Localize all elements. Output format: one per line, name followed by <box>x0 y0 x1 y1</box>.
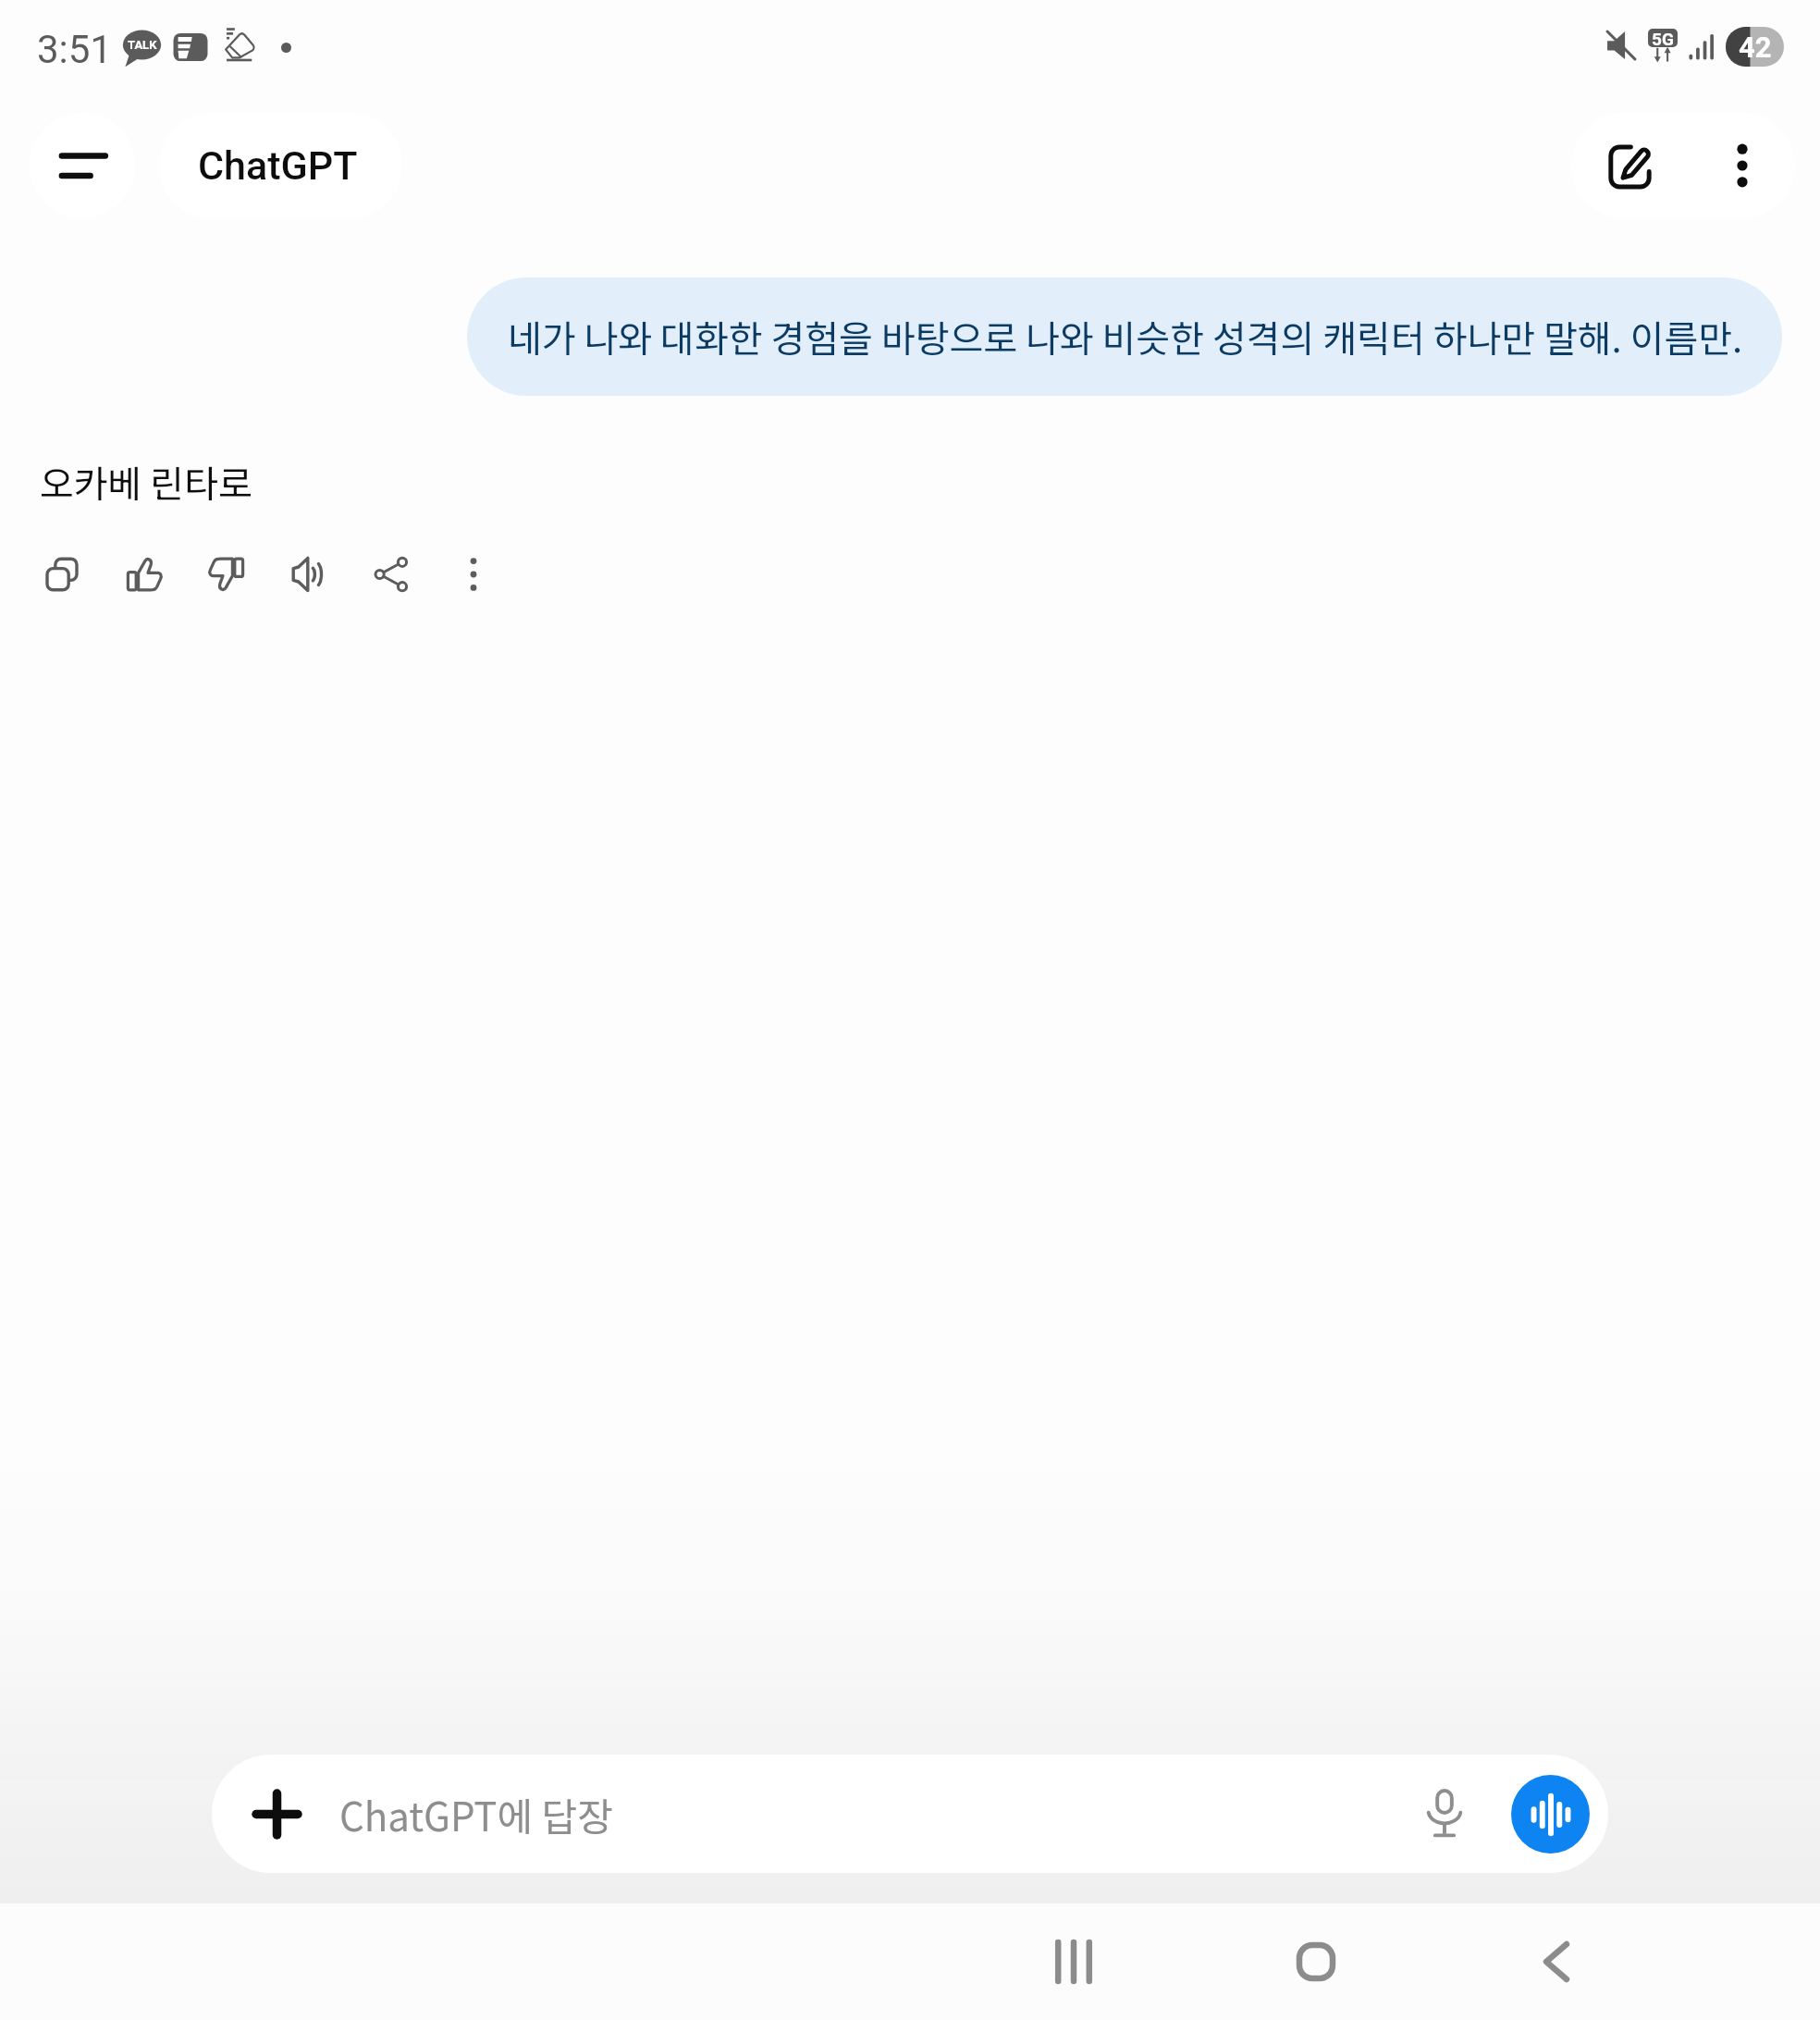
button[interactable]: Bad response <box>204 540 287 609</box>
button[interactable]: Back <box>1496 1903 1617 2020</box>
button[interactable]: More options <box>451 540 534 609</box>
button[interactable]: More options <box>1690 113 1795 218</box>
staticText: 5G <box>1652 29 1674 47</box>
staticText: ChatGPT에 답장 <box>339 1786 613 1842</box>
button[interactable]: Voice mode <box>1511 1775 1590 1854</box>
button[interactable]: Add attachment <box>212 1755 1608 1873</box>
staticText: 42 <box>1739 31 1772 64</box>
button[interactable]: Read aloud <box>287 540 369 609</box>
staticText: 오카베 린타로 <box>40 455 252 509</box>
button[interactable]: Menu <box>30 113 135 218</box>
button[interactable]: ChatGPT <box>159 113 402 218</box>
button[interactable]: Copy <box>40 540 122 609</box>
staticText: TALK <box>128 38 157 52</box>
staticText: 3:51 <box>37 27 112 72</box>
staticText: 네가 나와 대화한 경험을 바탕으로 나와 비슷한 성격의 캐릭터 하나만 말해… <box>508 310 1743 363</box>
button[interactable]: Home <box>1256 1903 1376 2020</box>
button[interactable]: Share <box>369 540 451 609</box>
button[interactable]: Good response <box>122 540 204 609</box>
button[interactable]: Recent apps <box>1014 1903 1134 2020</box>
button[interactable]: 네가 나와 대화한 경험을 바탕으로 나와 비슷한 성격의 캐릭터 하나만 말해… <box>467 277 1782 396</box>
button[interactable]: Dictate <box>1408 1777 1482 1851</box>
button[interactable]: New chat <box>1571 113 1690 218</box>
button[interactable]: Add attachment <box>236 1777 310 1851</box>
staticText: ChatGPT <box>198 142 358 189</box>
